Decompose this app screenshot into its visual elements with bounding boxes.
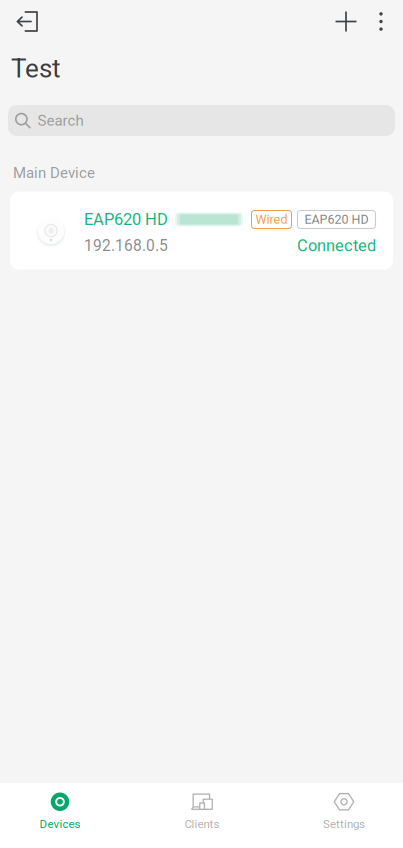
button[interactable]: Search — [8, 105, 395, 136]
button[interactable]: More options — [361, 0, 401, 42]
button[interactable]: Settings — [302, 794, 386, 836]
staticText: 192.168.0.5 — [84, 237, 168, 255]
staticText: Search — [37, 112, 83, 129]
staticText: EAP620 HD — [304, 212, 368, 227]
staticText: Main Device — [13, 164, 95, 182]
staticText: Test — [11, 53, 61, 84]
button[interactable]: Clients — [160, 794, 244, 836]
staticText: EAP620 HD — [84, 210, 168, 229]
button[interactable]: Devices — [18, 794, 102, 836]
staticText: Wired — [255, 212, 287, 227]
button[interactable]: Add — [331, 0, 361, 42]
button[interactable]: EAP620 HD — [10, 192, 393, 270]
button[interactable]: Exit — [9, 0, 45, 42]
staticText: Settings — [323, 817, 365, 831]
staticText: Connected — [297, 236, 376, 255]
staticText: Devices — [39, 817, 80, 831]
staticText: Clients — [184, 817, 219, 831]
